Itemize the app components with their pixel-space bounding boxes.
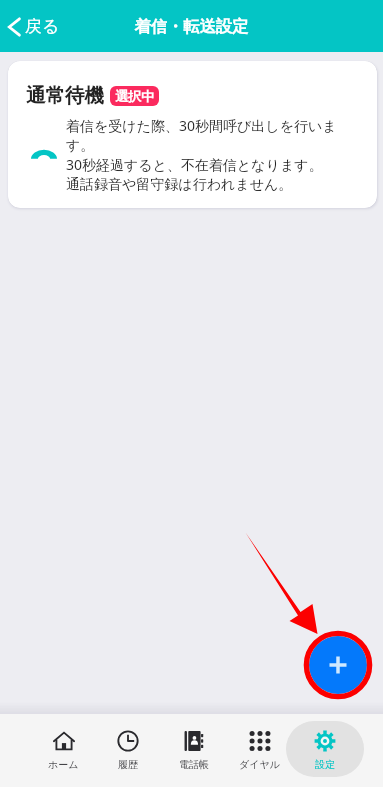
button[interactable]: ホーム: [24, 721, 102, 777]
staticText: 履歴: [118, 758, 138, 771]
staticText: 着信・転送設定: [134, 16, 249, 37]
button[interactable]: 電話帳: [155, 721, 233, 777]
staticText: ダイヤル: [239, 758, 280, 771]
staticText: ホーム: [48, 758, 79, 771]
button[interactable]: 戻る: [6, 10, 62, 43]
button[interactable]: ダイヤル: [220, 721, 298, 777]
button[interactable]: 設定: [286, 721, 364, 777]
button[interactable]: 通常待機: [8, 61, 377, 208]
staticText: 電話帳: [179, 758, 209, 771]
staticText: 戻る: [25, 16, 60, 37]
staticText: 通常待機: [26, 83, 104, 108]
staticText: 選択中: [115, 88, 154, 104]
staticText: 着信を受けた際、30秒間呼び出しを行います。 30秒経過すると、不在着信となりま…: [66, 116, 349, 193]
button[interactable]: Add: [309, 636, 367, 694]
staticText: 設定: [315, 758, 335, 771]
button[interactable]: 履歴: [89, 721, 167, 777]
